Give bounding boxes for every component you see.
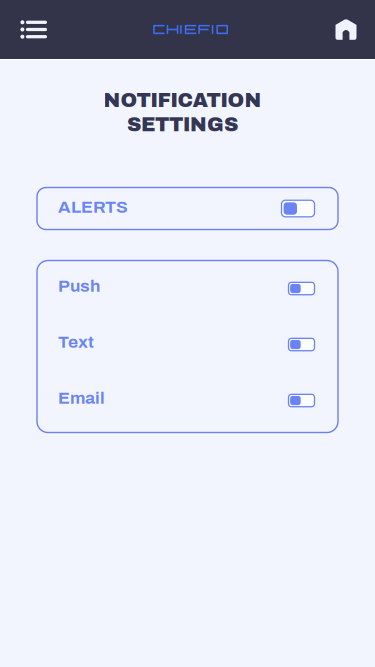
staticText: Email xyxy=(58,388,105,407)
button[interactable]: Home xyxy=(317,0,375,59)
staticText: Text xyxy=(58,332,94,351)
button[interactable]: Text xyxy=(37,316,338,372)
button[interactable]: ALERTS xyxy=(37,187,338,229)
button[interactable]: Menu xyxy=(0,0,67,59)
staticText: ALERTS xyxy=(58,197,128,216)
staticText: SETTINGS xyxy=(127,114,238,136)
staticText: Push xyxy=(58,276,100,295)
button[interactable]: Push xyxy=(37,260,338,316)
button[interactable]: Email xyxy=(37,372,338,428)
staticText: NOTIFICATION xyxy=(103,89,261,111)
